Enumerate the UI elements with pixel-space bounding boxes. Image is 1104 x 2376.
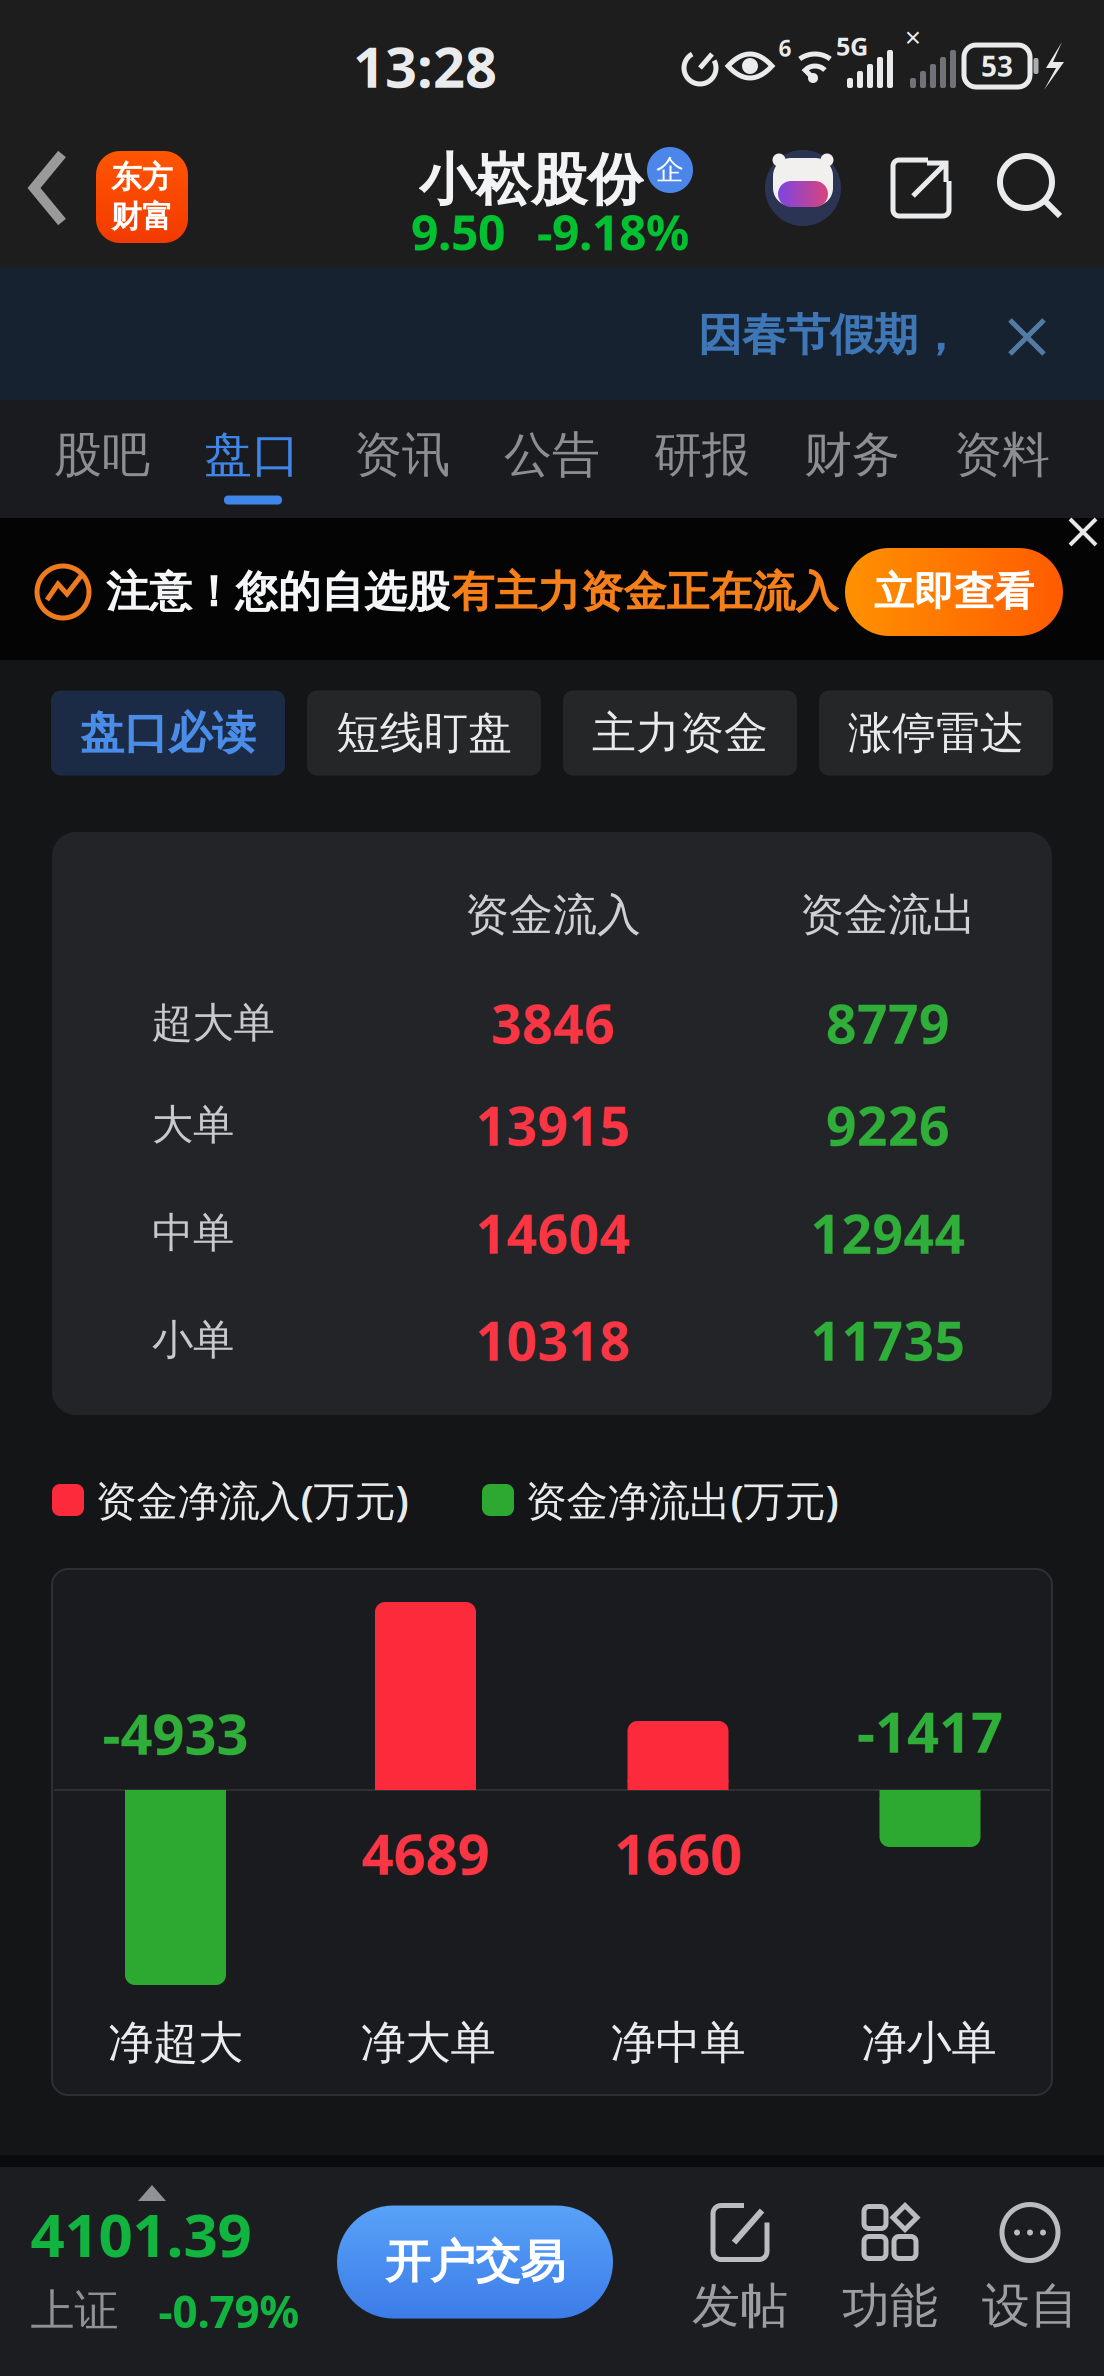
staticText: 财务 [804, 425, 900, 484]
staticText: 超大单 [151, 998, 274, 1048]
button[interactable]: 盘口必读 [51, 690, 285, 775]
staticText: 主力资金 [592, 706, 768, 760]
staticText: 5G [836, 29, 868, 63]
button[interactable]: 东方财富 [96, 151, 188, 243]
staticText: 东方 [111, 158, 173, 196]
staticText: 11735 [810, 1305, 965, 1375]
staticText: 净小单 [861, 2015, 996, 2071]
staticText: 4689 [361, 1816, 489, 1890]
button[interactable]: 盘口 [204, 425, 300, 484]
button[interactable]: 立即查看 [845, 548, 1063, 636]
button[interactable]: Close [1010, 320, 1044, 354]
staticText: 8779 [826, 988, 950, 1058]
staticText: 大单 [152, 1100, 234, 1150]
staticText: 涨停雷达 [848, 706, 1024, 760]
staticText: 设自 [982, 2276, 1078, 2335]
staticText: 资金流入 [465, 888, 641, 942]
staticText: 资金流出 [800, 888, 976, 942]
button[interactable]: Share [881, 148, 961, 228]
staticText: 净大单 [360, 2015, 495, 2071]
staticText: 资料 [954, 425, 1050, 484]
staticText: 净超大 [108, 2015, 243, 2071]
button[interactable]: Close [1070, 519, 1096, 545]
button[interactable]: 股吧 [54, 425, 150, 484]
staticText: 3846 [491, 988, 615, 1058]
staticText: 有主力资金正在流入 [451, 566, 838, 618]
staticText: 公告 [504, 425, 600, 484]
staticText: 中单 [152, 1208, 234, 1258]
staticText: 14604 [475, 1198, 630, 1268]
staticText: 财富 [111, 198, 173, 236]
button[interactable]: Search [990, 148, 1070, 228]
staticText: 盘口 [204, 425, 300, 484]
staticText: 6 [778, 33, 791, 63]
button[interactable]: Back [0, 108, 96, 268]
staticText: -1417 [857, 1694, 1003, 1768]
button[interactable]: 涨停雷达 [819, 690, 1053, 775]
staticText: 注意！您的自选股 [106, 566, 450, 618]
staticText: 发帖 [692, 2276, 788, 2335]
staticText: 功能 [842, 2276, 938, 2335]
button[interactable]: 公告 [504, 425, 600, 484]
staticText: 13:28 [353, 29, 497, 103]
staticText: 资金净流入(万元) [95, 1473, 408, 1527]
staticText: 资金净流出(万元) [525, 1473, 838, 1527]
staticText: 研报 [654, 425, 750, 484]
staticText: 13915 [475, 1090, 630, 1160]
staticText: -0.79% [158, 2282, 299, 2340]
button[interactable]: 短线盯盘 [307, 690, 541, 775]
staticText: 上证 [30, 2284, 118, 2338]
button[interactable]: 资讯 [354, 425, 450, 484]
button[interactable]: 功能 [842, 2202, 938, 2335]
staticText: 立即查看 [874, 567, 1034, 616]
button[interactable]: 资料 [954, 425, 1050, 484]
staticText: 盘口必读 [80, 706, 256, 760]
staticText: 9.50 [411, 200, 505, 264]
button[interactable]: 开户交易 [337, 2205, 613, 2318]
staticText: -4933 [102, 1696, 248, 1770]
staticText: 开户交易 [385, 2234, 565, 2290]
staticText: 资讯 [354, 425, 450, 484]
button[interactable]: 发帖 [692, 2202, 788, 2335]
staticText: 9226 [826, 1090, 950, 1160]
staticText: 小崧股份 [419, 146, 643, 214]
staticText: 12944 [810, 1198, 965, 1268]
staticText: 净中单 [610, 2015, 745, 2071]
button[interactable]: 设自 [982, 2202, 1078, 2335]
staticText: -9.18% [537, 200, 689, 264]
button[interactable]: 主力资金 [563, 690, 797, 775]
staticText: 股吧 [54, 425, 150, 484]
staticText: 10318 [475, 1305, 630, 1375]
staticText: 4101.39 [30, 2194, 251, 2274]
button[interactable]: 智能助手 [765, 150, 841, 226]
staticText: ✕ [904, 26, 922, 50]
staticText: 1660 [614, 1816, 742, 1890]
staticText: 企 [656, 153, 684, 187]
button[interactable]: 4101.39 [30, 2194, 299, 2340]
staticText: 小单 [152, 1315, 234, 1365]
button[interactable]: 财务 [804, 425, 900, 484]
staticText: 53 [981, 47, 1013, 85]
staticText: 短线盯盘 [336, 706, 512, 760]
button[interactable]: 研报 [654, 425, 750, 484]
staticText: 因春节假期， [698, 308, 962, 362]
